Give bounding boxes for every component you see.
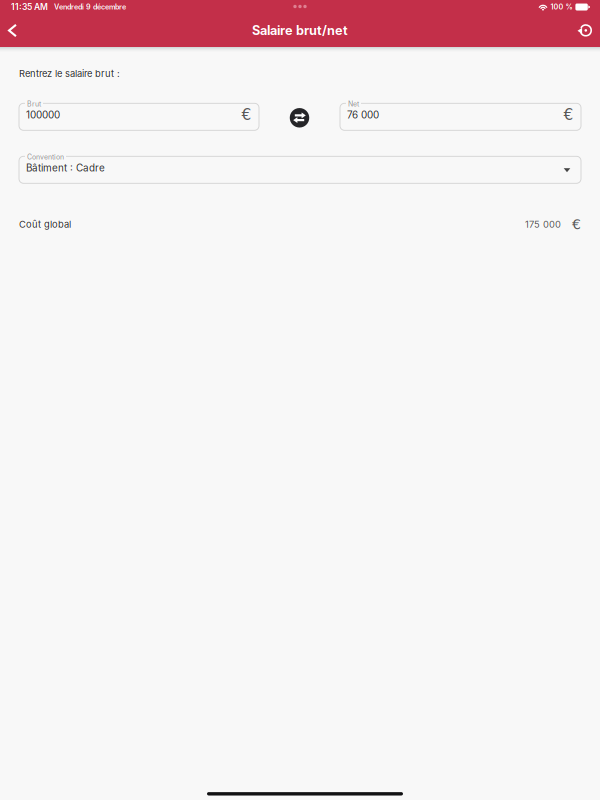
staticText: 175 000: [525, 219, 561, 230]
button[interactable]: Back: [0, 14, 25, 47]
button[interactable]: History: [571, 14, 598, 47]
button[interactable]: Swap brut and net: [273, 100, 325, 127]
staticText: Bâtiment : Cadre: [26, 162, 105, 174]
staticText: Salaire brut/net: [252, 23, 348, 38]
staticText: Brut: [27, 100, 41, 108]
staticText: Vendredi 9 décembre: [54, 3, 126, 11]
staticText: 11:35 AM: [11, 2, 48, 12]
staticText: 100000: [26, 109, 60, 121]
staticText: €: [241, 106, 251, 124]
staticText: Convention: [27, 153, 64, 161]
button[interactable]: Bâtiment : Cadre: [19, 150, 581, 183]
staticText: €: [572, 216, 581, 233]
staticText: Rentrez le salaire brut :: [19, 68, 120, 79]
staticText: 100 %: [550, 3, 572, 11]
staticText: 76 000: [347, 109, 379, 121]
staticText: €: [563, 106, 573, 124]
staticText: Net: [348, 100, 359, 108]
staticText: Coût global: [19, 219, 71, 230]
